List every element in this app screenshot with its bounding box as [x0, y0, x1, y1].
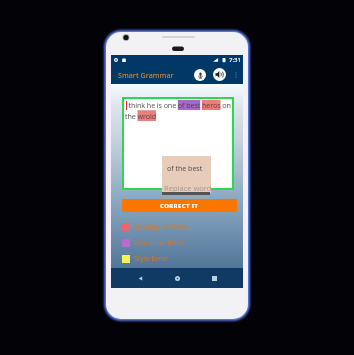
button[interactable]: Speak text: [213, 68, 226, 81]
staticText: Smart Grammar: [118, 70, 174, 80]
button[interactable]: CORRECT IT: [122, 199, 237, 212]
button[interactable]: Back: [132, 270, 148, 286]
button[interactable]: Spelling Mistake: [122, 222, 188, 232]
staticText: Style Error: [134, 254, 169, 264]
button[interactable]: Grammar Error: [122, 238, 185, 248]
button[interactable]: Recent apps: [206, 270, 222, 286]
button[interactable]: Home: [169, 270, 185, 286]
staticText: of the best: [167, 164, 203, 174]
button[interactable]: Voice input: [194, 69, 206, 81]
staticText: Replace word: [164, 183, 212, 193]
button[interactable]: More options: [231, 70, 240, 79]
staticText: think he is one of best heros on the wro…: [125, 100, 233, 121]
staticText: Grammar Error: [134, 238, 185, 248]
staticText: 7:31: [229, 56, 241, 64]
button[interactable]: Style Error: [122, 254, 169, 264]
button[interactable]: of the best: [162, 156, 211, 193]
staticText: Spelling Mistake: [134, 222, 188, 232]
staticText: CORRECT IT: [160, 202, 199, 210]
